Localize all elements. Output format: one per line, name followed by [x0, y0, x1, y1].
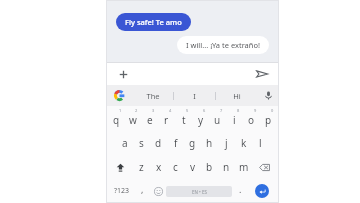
button[interactable]: a [116, 131, 133, 155]
button[interactable]: 4 [158, 106, 175, 131]
staticText: 2 [135, 108, 138, 113]
button[interactable]: The [132, 85, 173, 106]
staticText: I [193, 91, 196, 101]
staticText: o [248, 113, 255, 127]
button[interactable]: 9 [243, 106, 260, 131]
button[interactable]: Add attachment [115, 66, 131, 82]
staticText: s [139, 136, 144, 150]
button[interactable]: . [232, 179, 248, 203]
button[interactable]: Voice input [257, 85, 279, 106]
staticText: x [156, 160, 162, 174]
staticText: Hi [233, 91, 241, 101]
button[interactable]: 2 [124, 106, 141, 131]
button[interactable]: h [201, 131, 218, 155]
staticText: 3 [152, 108, 155, 113]
button[interactable]: I [174, 85, 215, 106]
staticText: 6 [203, 108, 206, 113]
staticText: 1 [119, 108, 122, 113]
button[interactable]: s [133, 131, 150, 155]
button[interactable]: k [235, 131, 252, 155]
staticText: 9 [254, 108, 257, 113]
staticText: 7 [220, 108, 223, 113]
button[interactable]: Backspace [252, 155, 277, 179]
button[interactable]: EN • ES [166, 186, 232, 197]
staticText: u [214, 113, 221, 127]
staticText: ?123 [114, 186, 130, 196]
staticText: e [147, 113, 153, 127]
button[interactable]: 8 [226, 106, 243, 131]
staticText: Fly safe! Te amo [125, 17, 182, 27]
button[interactable]: Shift [108, 155, 133, 179]
button[interactable]: 1 [108, 106, 124, 131]
staticText: r [164, 113, 169, 127]
staticText: g [189, 136, 196, 150]
staticText: , [141, 183, 144, 195]
button[interactable]: Emoji [150, 179, 166, 203]
staticText: f [174, 136, 178, 150]
staticText: l [259, 136, 262, 150]
button[interactable]: Enter [255, 184, 269, 198]
staticText: 4 [169, 108, 172, 113]
button[interactable]: Send [254, 66, 270, 82]
staticText: i [233, 113, 236, 127]
button[interactable]: f [167, 131, 184, 155]
button[interactable]: g [184, 131, 201, 155]
staticText: b [206, 160, 213, 174]
button[interactable]: ?123 [109, 179, 134, 203]
staticText: c [173, 160, 178, 174]
staticText: h [206, 136, 213, 150]
button[interactable]: , [134, 179, 150, 203]
button[interactable]: d [150, 131, 167, 155]
button[interactable]: b [201, 155, 218, 179]
staticText: 0 [271, 108, 274, 113]
staticText: y [198, 113, 204, 127]
button[interactable]: 7 [209, 106, 226, 131]
button[interactable]: x [150, 155, 167, 179]
button[interactable]: j [218, 131, 235, 155]
staticText: 8 [237, 108, 240, 113]
button[interactable]: c [167, 155, 184, 179]
button[interactable]: 5 [175, 106, 192, 131]
staticText: I will... ¡Ya te extraño! [186, 40, 260, 50]
staticText: t [182, 113, 186, 127]
staticText: v [190, 160, 196, 174]
staticText: 5 [186, 108, 189, 113]
staticText: . [239, 183, 242, 195]
staticText: q [113, 113, 120, 127]
staticText: d [155, 136, 162, 150]
button[interactable]: v [184, 155, 201, 179]
staticText: p [265, 113, 272, 127]
button[interactable]: 0 [260, 106, 277, 131]
button[interactable]: Hi [216, 85, 257, 106]
staticText: a [122, 136, 128, 150]
staticText: The [146, 91, 160, 101]
button[interactable]: 3 [141, 106, 158, 131]
button[interactable]: 6 [192, 106, 209, 131]
button[interactable]: I will... ¡Ya te extraño! [177, 36, 269, 54]
button[interactable]: m [235, 155, 252, 179]
staticText: z [139, 160, 144, 174]
button[interactable]: l [252, 131, 269, 155]
staticText: EN • ES [192, 189, 207, 195]
button[interactable]: z [133, 155, 150, 179]
staticText: m [239, 160, 249, 174]
button[interactable]: Google search [106, 85, 132, 106]
button[interactable]: n [218, 155, 235, 179]
staticText: k [241, 136, 247, 150]
staticText: j [225, 136, 228, 150]
staticText: w [129, 113, 137, 127]
staticText: n [223, 160, 230, 174]
button[interactable]: Fly safe! Te amo [116, 13, 191, 31]
